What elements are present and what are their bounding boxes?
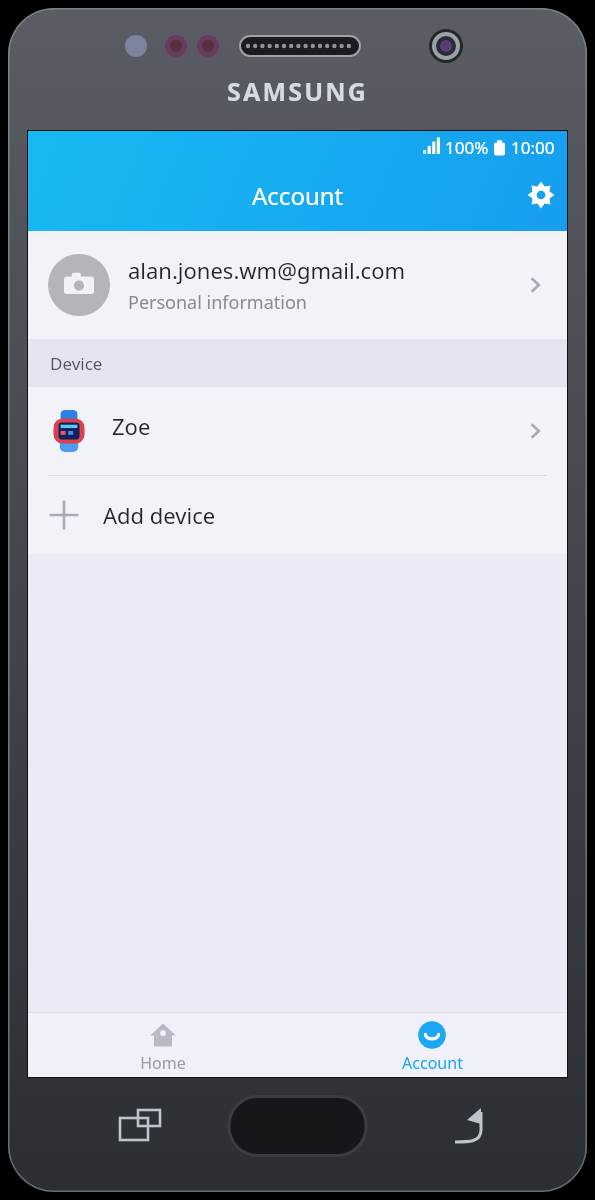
staticText: 100% — [445, 136, 489, 159]
button[interactable]: Home — [28, 1013, 297, 1077]
button[interactable]: alan.jones.wm@gmail.com — [28, 231, 567, 339]
staticText: Personal information — [128, 290, 307, 315]
button[interactable]: Zoe — [28, 387, 567, 475]
staticText: Home — [140, 1052, 186, 1074]
staticText: Add device — [103, 500, 216, 530]
staticText: Account — [252, 179, 344, 212]
button[interactable]: Add device — [28, 476, 567, 554]
button[interactable]: Account — [297, 1013, 567, 1077]
staticText: Account — [402, 1052, 463, 1074]
staticText: SAMSUNG — [227, 74, 369, 108]
staticText: Zoe — [112, 411, 523, 441]
staticText: Device — [50, 352, 103, 375]
staticText: 10:00 — [511, 136, 555, 159]
staticText: alan.jones.wm@gmail.com — [128, 255, 406, 285]
button[interactable]: Settings — [515, 169, 567, 221]
